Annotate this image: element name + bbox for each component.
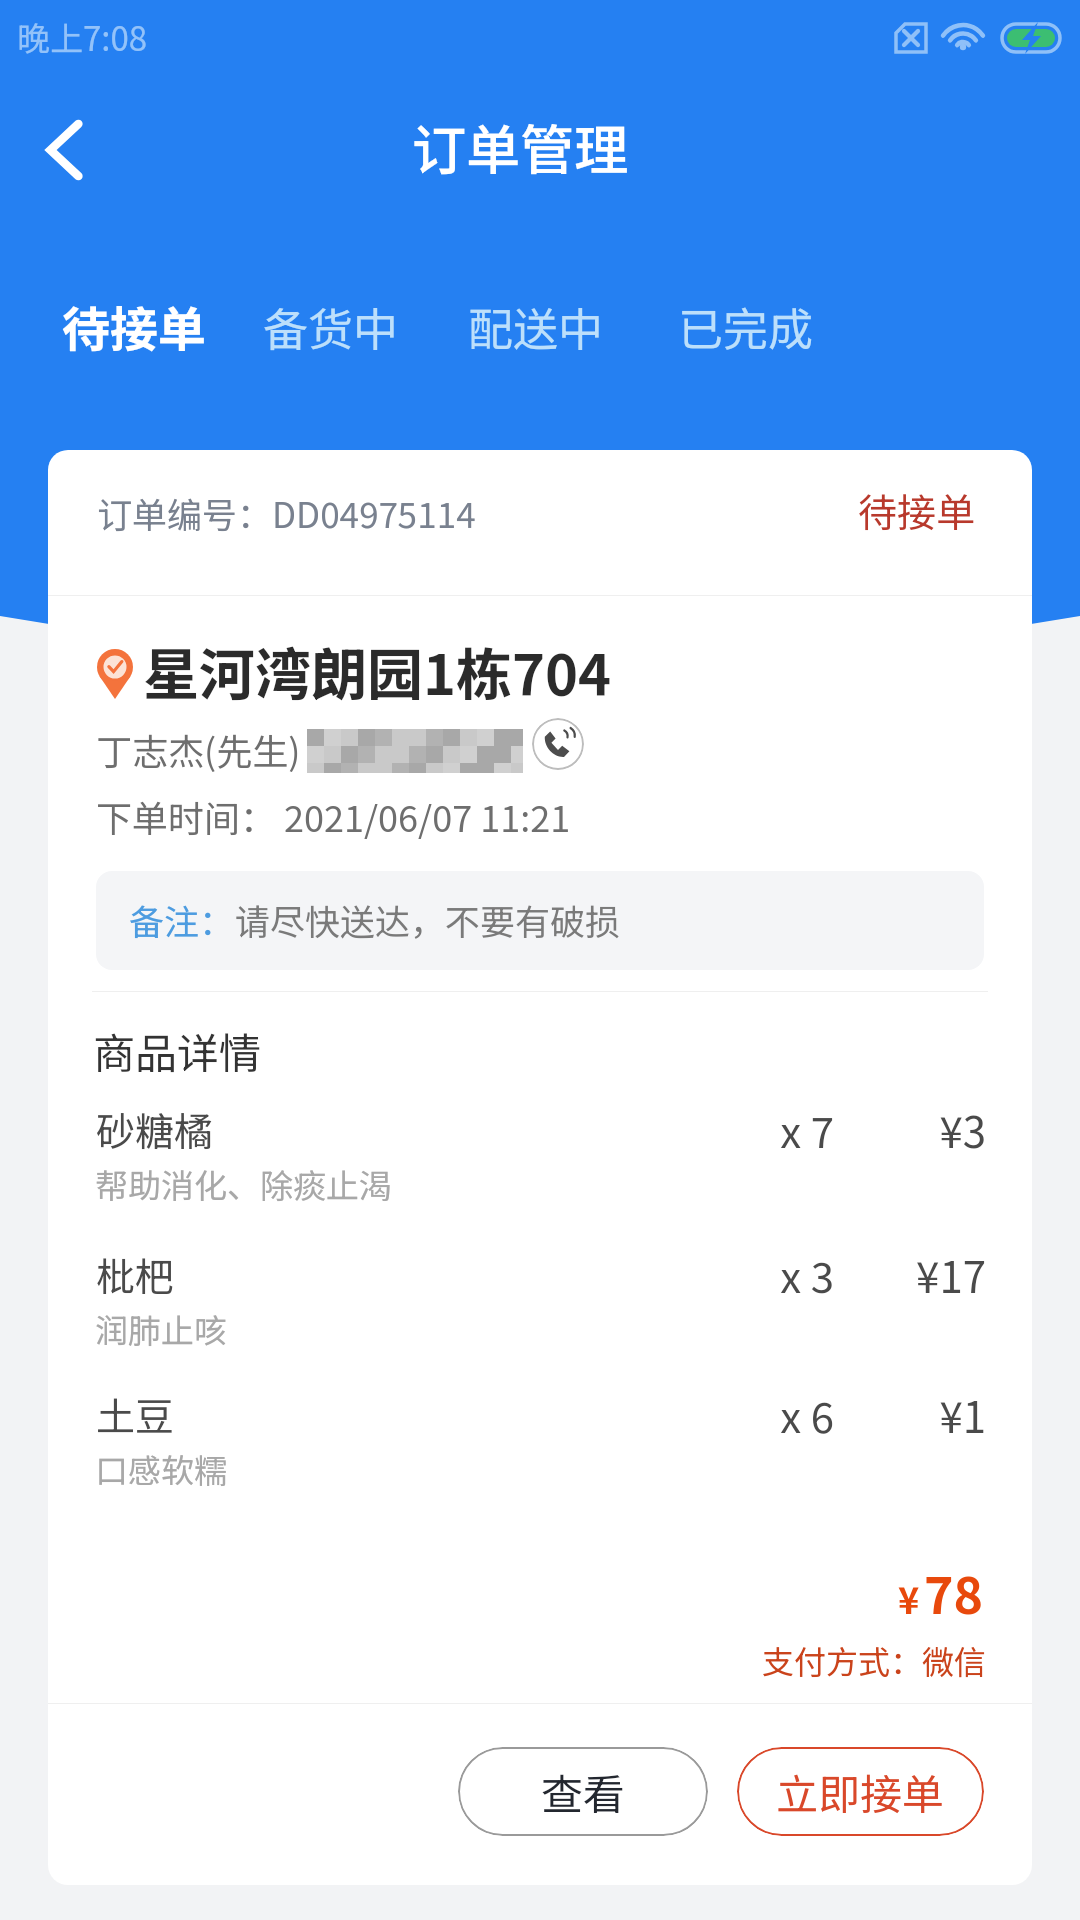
staticText: 润肺止咳 [95,1305,227,1353]
staticText: 土豆 [96,1386,175,1442]
staticText: 口感软糯 [95,1445,227,1493]
staticText: 立即接单 [776,1761,945,1822]
button[interactable]: Back [18,101,128,211]
staticText: 商品详情 [93,1020,262,1081]
staticText: 请尽快送达，不要有破损 [235,894,621,945]
button[interactable]: 备货中 [263,294,399,359]
staticText: 备货中 [263,294,399,359]
staticText: 78 [924,1556,983,1628]
staticText: 已完成 [678,294,814,359]
button[interactable]: Call customer [532,718,584,770]
staticText: 晚上7:08 [17,13,148,61]
staticText: 订单编号：DD04975114 [97,487,476,538]
staticText: 星河湾朗园1栋704 [143,630,612,711]
staticText: 配送中 [468,294,604,359]
button[interactable]: 立即接单 [737,1747,984,1836]
staticText: 待接单 [62,291,207,361]
staticText: ¥1 [800,1384,986,1445]
staticText: x 6 [694,1384,834,1445]
staticText: 待接单 [825,482,975,538]
staticText: 砂糖橘 [96,1101,214,1157]
staticText: x 7 [694,1099,834,1160]
staticText: ¥ [898,1572,920,1624]
staticText: 查看 [541,1761,626,1822]
staticText: 备注： [129,894,235,945]
button[interactable]: 配送中 [468,294,604,359]
staticText: 丁志杰(先生) [96,723,301,775]
staticText: 下单时间： 2021/06/07 11:21 [96,790,571,842]
staticText: 枇杷 [96,1246,175,1302]
button[interactable]: 待接单 [62,291,207,361]
staticText: 订单管理 [412,107,628,185]
staticText: 帮助消化、除痰止渴 [95,1160,392,1208]
staticText: ¥3 [800,1099,986,1160]
staticText: 支付方式：微信 [762,1637,987,1683]
staticText: ¥17 [800,1244,986,1305]
button[interactable]: 已完成 [678,294,814,359]
staticText: x 3 [694,1244,834,1305]
button[interactable]: 查看 [458,1747,708,1836]
